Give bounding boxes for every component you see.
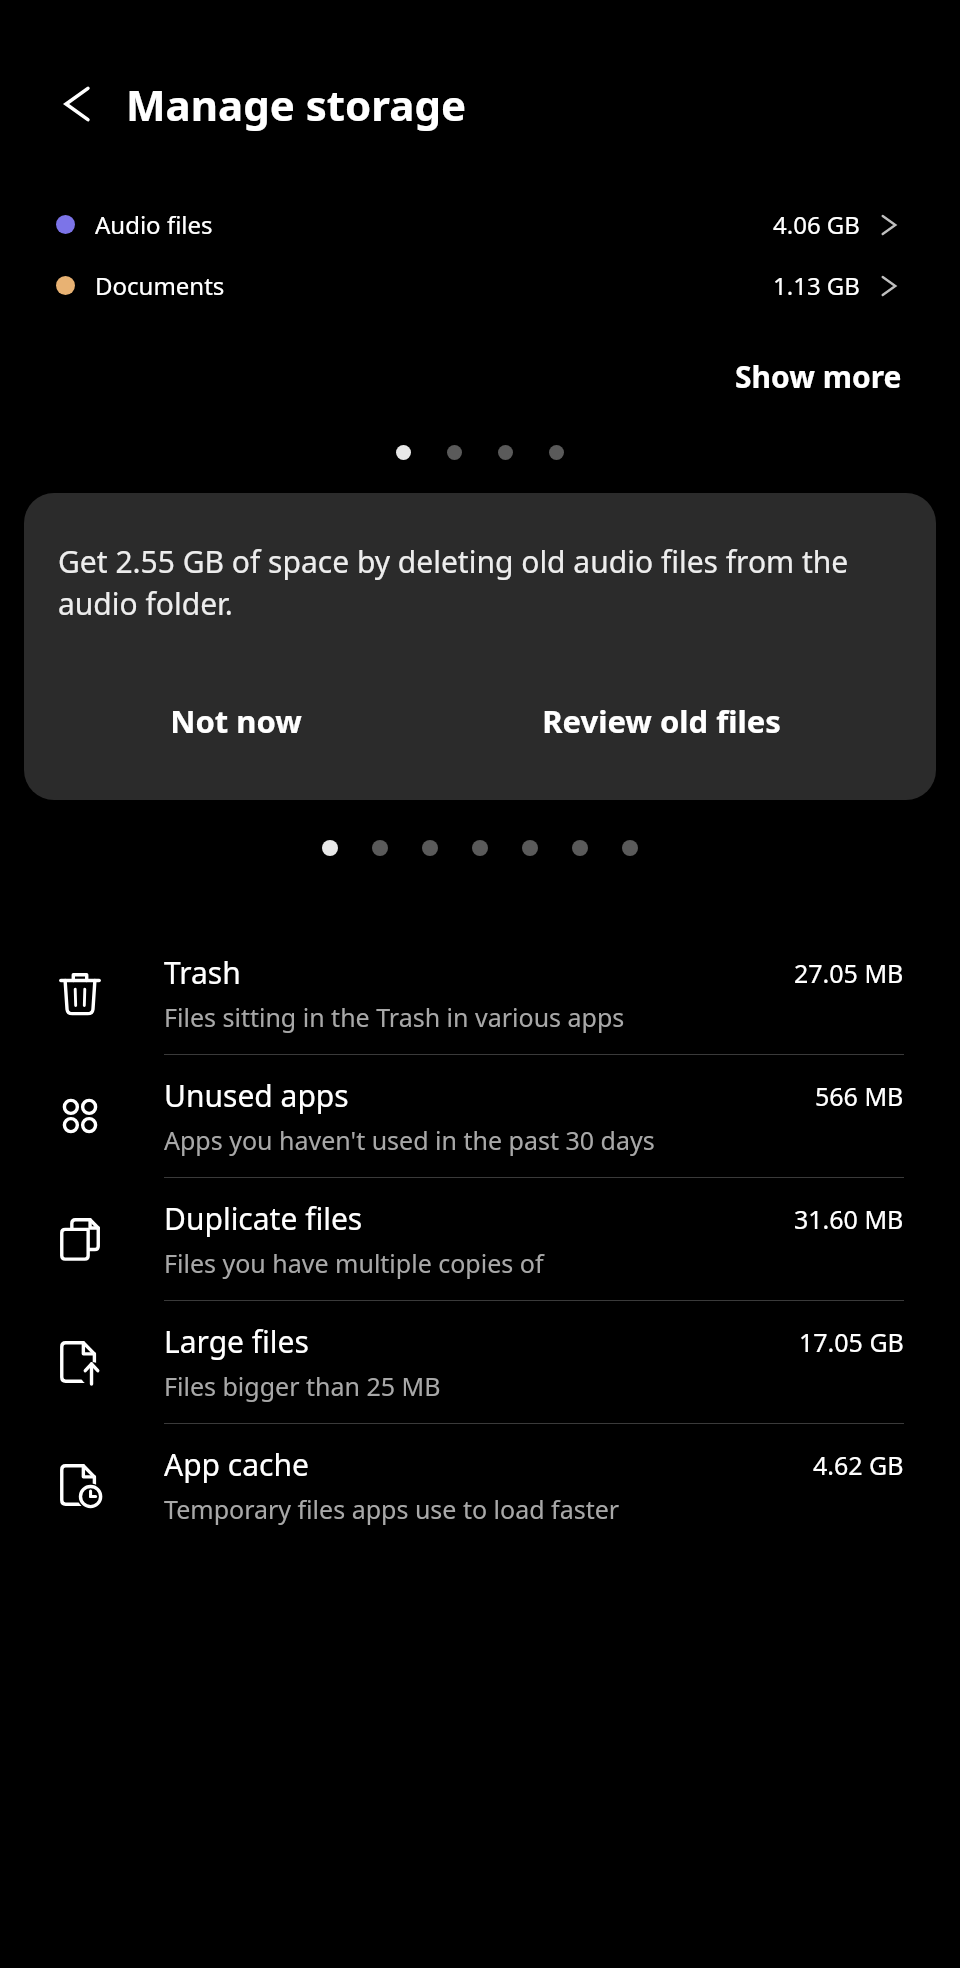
staticText: 1.13 GB (773, 269, 860, 302)
button[interactable]: Audio files (0, 194, 960, 255)
button[interactable]: Trash (0, 932, 960, 1054)
staticText: 4.06 GB (773, 208, 860, 241)
staticText: Temporary files apps use to load faster (164, 1492, 620, 1526)
staticText: Not now (170, 700, 302, 742)
staticText: Manage storage (126, 76, 467, 133)
staticText: 31.60 MB (794, 1202, 904, 1236)
staticText: Get 2.55 GB of space by deleting old aud… (58, 541, 902, 624)
staticText: 4.62 GB (813, 1448, 904, 1482)
staticText: Files bigger than 25 MB (164, 1369, 441, 1403)
staticText: Show more (735, 356, 902, 397)
staticText: 566 MB (815, 1079, 904, 1113)
staticText: Files you have multiple copies of (164, 1246, 544, 1280)
button[interactable]: Duplicate files (0, 1178, 960, 1300)
button[interactable]: App cache (0, 1424, 960, 1546)
button[interactable]: Review old files (417, 686, 906, 756)
staticText: Large files (164, 1321, 309, 1362)
button[interactable]: Not now (54, 686, 417, 756)
staticText: Trash (164, 952, 241, 993)
staticText: Unused apps (164, 1075, 349, 1116)
staticText: 27.05 MB (794, 956, 904, 990)
button[interactable]: Show more (719, 346, 918, 407)
staticText: 17.05 GB (799, 1325, 904, 1359)
staticText: Duplicate files (164, 1198, 363, 1239)
staticText: Review old files (542, 700, 781, 742)
staticText: Documents (95, 269, 225, 302)
button[interactable]: Unused apps (0, 1055, 960, 1177)
staticText: Audio files (95, 208, 213, 241)
button[interactable]: Documents (0, 255, 960, 316)
staticText: App cache (164, 1444, 309, 1485)
button[interactable]: Back (42, 69, 112, 139)
button[interactable]: Large files (0, 1301, 960, 1423)
staticText: Files sitting in the Trash in various ap… (164, 1000, 625, 1034)
staticText: Apps you haven't used in the past 30 day… (164, 1123, 655, 1157)
